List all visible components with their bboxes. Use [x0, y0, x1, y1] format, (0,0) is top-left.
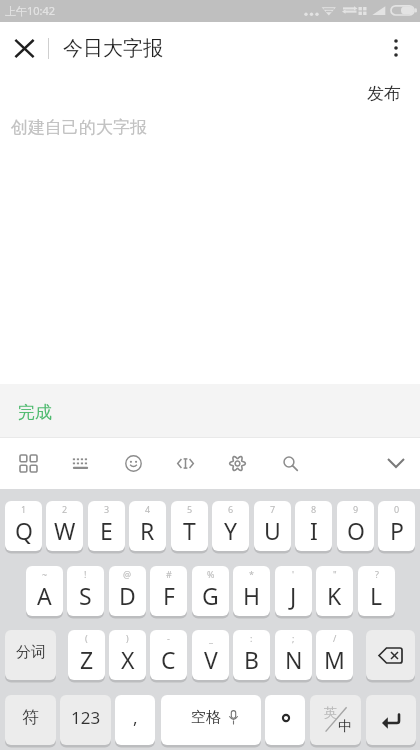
- button[interactable]: 空格: [161, 694, 261, 747]
- button[interactable]: Emoji: [110, 440, 156, 486]
- staticText: K: [327, 580, 342, 611]
- staticText: 空格: [191, 708, 221, 727]
- staticText: I: [310, 515, 318, 546]
- button[interactable]: Settings: [214, 440, 260, 486]
- staticText: 今日大字报: [63, 36, 163, 61]
- staticText: (: [85, 632, 88, 644]
- button[interactable]: 123: [60, 694, 111, 747]
- staticText: 分词: [16, 643, 46, 662]
- staticText: 2: [62, 503, 68, 515]
- staticText: :: [250, 632, 253, 644]
- staticText: J: [290, 580, 297, 611]
- button[interactable]: 5: [171, 500, 208, 553]
- button[interactable]: Text edit: [162, 440, 208, 486]
- button[interactable]: Period: [265, 694, 305, 747]
- button[interactable]: 4: [129, 500, 166, 553]
- staticText: T: [183, 515, 196, 546]
- button[interactable]: Hide keyboard: [373, 440, 419, 486]
- staticText: X: [121, 644, 135, 675]
- staticText: %: [207, 568, 215, 580]
- button[interactable]: 符: [5, 694, 56, 747]
- button[interactable]: Close: [0, 24, 48, 72]
- staticText: 上午10:42: [5, 3, 56, 18]
- staticText: /: [333, 632, 337, 644]
- button[interactable]: (: [68, 629, 105, 682]
- staticText: 8: [311, 503, 317, 515]
- button[interactable]: 8: [295, 500, 332, 553]
- button[interactable]: %: [192, 565, 229, 618]
- staticText: ": [333, 568, 337, 580]
- staticText: M: [324, 644, 345, 675]
- button[interactable]: ,: [115, 694, 155, 747]
- button[interactable]: Switch language: [310, 694, 361, 747]
- button[interactable]: Search: [267, 440, 313, 486]
- staticText: S: [79, 580, 92, 611]
- staticText: 1: [21, 503, 27, 515]
- button[interactable]: Keyboard: [57, 440, 103, 486]
- button[interactable]: ?: [358, 565, 395, 618]
- staticText: ~: [42, 568, 48, 580]
- button[interactable]: ): [109, 629, 146, 682]
- staticText: ;: [292, 632, 295, 644]
- button[interactable]: /: [316, 629, 353, 682]
- staticText: N: [285, 644, 303, 675]
- button[interactable]: _: [192, 629, 229, 682]
- staticText: Y: [224, 515, 238, 546]
- staticText: 发布: [367, 83, 401, 104]
- button[interactable]: 分词: [5, 629, 56, 682]
- button[interactable]: 6: [212, 500, 249, 553]
- staticText: ': [292, 568, 295, 580]
- staticText: W: [54, 515, 76, 546]
- button[interactable]: ": [316, 565, 353, 618]
- button[interactable]: 3: [88, 500, 125, 553]
- button[interactable]: 9: [337, 500, 374, 553]
- staticText: 4: [145, 503, 151, 515]
- button[interactable]: ': [275, 565, 312, 618]
- staticText: 中: [338, 718, 352, 736]
- button[interactable]: 发布: [353, 77, 420, 110]
- button[interactable]: 1: [5, 500, 42, 553]
- staticText: 123: [71, 706, 101, 729]
- staticText: 符: [22, 707, 39, 728]
- staticText: Z: [80, 644, 94, 675]
- staticText: -: [167, 632, 170, 644]
- staticText: E: [100, 515, 113, 546]
- staticText: !: [84, 568, 87, 580]
- button[interactable]: 完成: [4, 394, 66, 431]
- staticText: G: [202, 580, 219, 611]
- button[interactable]: More options: [372, 24, 420, 72]
- staticText: 3: [104, 503, 110, 515]
- staticText: #: [166, 568, 172, 580]
- button[interactable]: @: [109, 565, 146, 618]
- button[interactable]: 2: [46, 500, 83, 553]
- staticText: 5: [187, 503, 193, 515]
- button[interactable]: ~: [26, 565, 63, 618]
- staticText: D: [119, 580, 136, 611]
- button[interactable]: Apps: [5, 440, 51, 486]
- staticText: 完成: [18, 402, 52, 423]
- staticText: 0: [394, 503, 400, 515]
- staticText: H: [243, 580, 261, 611]
- staticText: 9: [353, 503, 359, 515]
- button[interactable]: *: [233, 565, 270, 618]
- button[interactable]: -: [150, 629, 187, 682]
- button[interactable]: !: [67, 565, 104, 618]
- staticText: V: [204, 644, 218, 675]
- button[interactable]: Enter: [366, 694, 416, 747]
- staticText: F: [163, 580, 175, 611]
- staticText: R: [140, 515, 155, 546]
- staticText: B: [244, 644, 259, 675]
- staticText: ?: [375, 568, 379, 580]
- staticText: 创建自己的大字报: [11, 117, 147, 138]
- staticText: U: [264, 515, 281, 546]
- button[interactable]: 0: [378, 500, 415, 553]
- button[interactable]: 7: [254, 500, 291, 553]
- button[interactable]: ;: [275, 629, 312, 682]
- staticText: 6: [228, 503, 234, 515]
- button[interactable]: Backspace: [366, 629, 415, 682]
- staticText: A: [37, 580, 52, 611]
- button[interactable]: :: [233, 629, 270, 682]
- button[interactable]: #: [150, 565, 187, 618]
- staticText: @: [123, 568, 132, 580]
- staticText: _: [209, 632, 213, 644]
